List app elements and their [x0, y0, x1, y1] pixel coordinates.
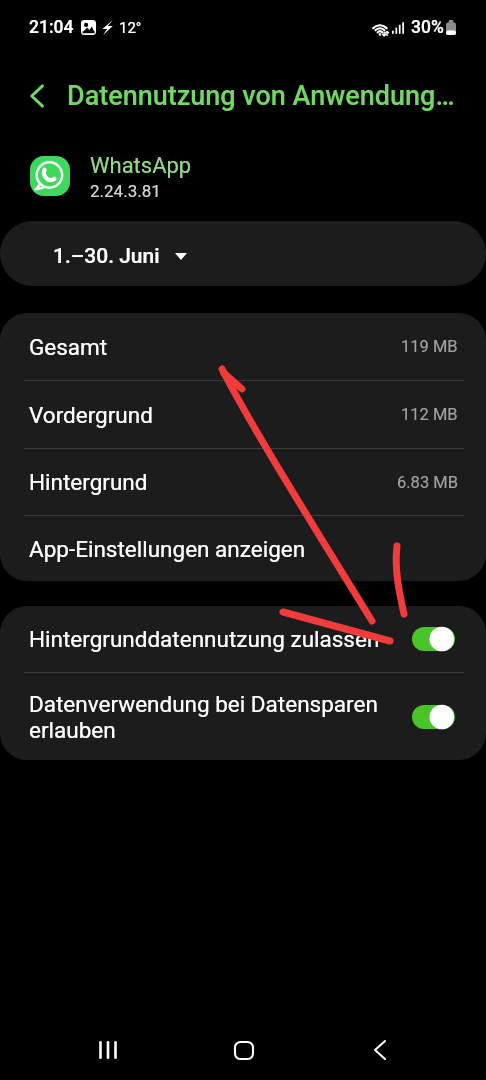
button[interactable]: Gesamt	[0, 313, 486, 380]
staticText: 119 MB	[401, 337, 458, 356]
staticText: 30%	[411, 17, 444, 38]
staticText: Hintergrund	[29, 469, 148, 495]
button[interactable]: Startbildschirm	[214, 1020, 274, 1080]
staticText: Datenverwendung bei Datensparen erlauben	[29, 691, 404, 743]
staticText: 2.24.3.81	[90, 181, 161, 201]
staticText: App-Einstellungen anzeigen	[29, 536, 306, 562]
button[interactable]: Hintergrunddatennutzung zulassen	[0, 606, 486, 672]
staticText: Datennutzung von Anwendung…	[67, 80, 455, 112]
button[interactable]: 1.–30. Juni	[0, 221, 486, 286]
staticText: 12°	[119, 19, 142, 37]
staticText: 1.–30. Juni	[53, 244, 160, 269]
staticText: Gesamt	[29, 334, 108, 360]
button[interactable]: Letzte Apps	[78, 1020, 138, 1080]
staticText: Hintergrunddatennutzung zulassen	[29, 626, 404, 652]
staticText: 6.83 MB	[397, 473, 458, 492]
staticText: WhatsApp	[90, 153, 192, 179]
button[interactable]: Vordergrund	[0, 381, 486, 448]
button[interactable]: Datenverwendung bei Datensparen erlauben	[0, 673, 486, 760]
staticText: Vordergrund	[29, 402, 153, 428]
staticText: 21:04	[29, 17, 74, 38]
staticText: 112 MB	[401, 405, 458, 424]
button[interactable]: Zurück	[8, 67, 66, 125]
button[interactable]: Zurück	[350, 1020, 410, 1080]
button[interactable]: Hintergrund	[0, 449, 486, 515]
button[interactable]: App-Einstellungen anzeigen	[0, 516, 486, 581]
